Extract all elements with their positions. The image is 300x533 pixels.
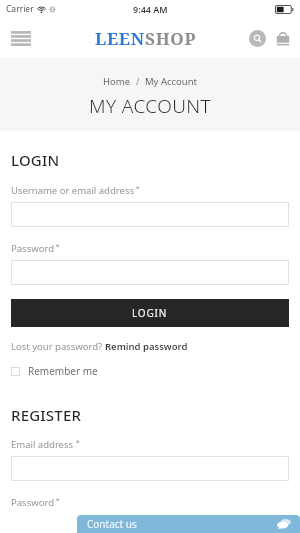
- staticText: /: [131, 75, 145, 88]
- staticText: LEEN: [95, 27, 145, 50]
- staticText: *: [54, 242, 60, 252]
- button[interactable]: Remember me: [11, 364, 98, 378]
- staticText: Password: [11, 242, 54, 255]
- button[interactable]: Remind password: [105, 340, 188, 353]
- button[interactable]: Search: [249, 30, 266, 47]
- staticText: My Account: [145, 75, 198, 88]
- button[interactable]: [11, 260, 289, 285]
- staticText: LOGIN: [11, 150, 60, 170]
- staticText: *: [54, 496, 60, 506]
- staticText: Lost your password?: [11, 340, 105, 353]
- staticText: 9:44 AM: [133, 3, 168, 15]
- button[interactable]: Menu: [8, 25, 34, 51]
- staticText: *: [134, 184, 140, 194]
- button[interactable]: LEEN: [95, 27, 197, 50]
- staticText: *: [74, 438, 80, 448]
- button[interactable]: Cart: [274, 29, 292, 47]
- button[interactable]: Home: [103, 75, 131, 88]
- staticText: SHOP: [145, 27, 197, 50]
- staticText: MY ACCOUNT: [89, 93, 211, 119]
- staticText: Remember me: [28, 364, 98, 378]
- staticText: Carrier: [6, 3, 34, 15]
- staticText: Contact us: [87, 517, 137, 531]
- staticText: LOGIN: [132, 306, 168, 320]
- staticText: REGISTER: [11, 405, 82, 425]
- staticText: Username or email address: [11, 184, 134, 197]
- staticText: Password: [11, 496, 54, 509]
- staticText: Email address: [11, 438, 74, 451]
- button[interactable]: [11, 202, 289, 227]
- button[interactable]: [11, 456, 289, 481]
- button[interactable]: Contact us: [77, 515, 300, 533]
- button[interactable]: LOGIN: [11, 299, 289, 327]
